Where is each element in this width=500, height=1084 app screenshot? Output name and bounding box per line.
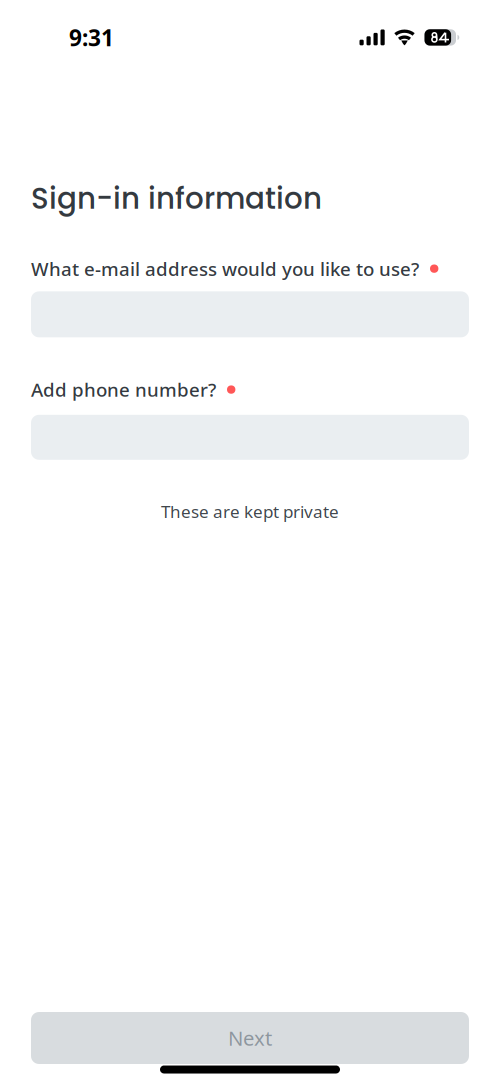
staticText: These are kept private bbox=[161, 500, 339, 523]
staticText: Sign-in information bbox=[31, 178, 322, 219]
staticText: Add phone number? bbox=[31, 377, 216, 402]
button[interactable]: Next bbox=[31, 1012, 469, 1064]
staticText: Next bbox=[228, 1024, 272, 1052]
staticText: What e-mail address would you like to us… bbox=[31, 256, 419, 281]
staticText: 9:31 bbox=[69, 22, 114, 53]
